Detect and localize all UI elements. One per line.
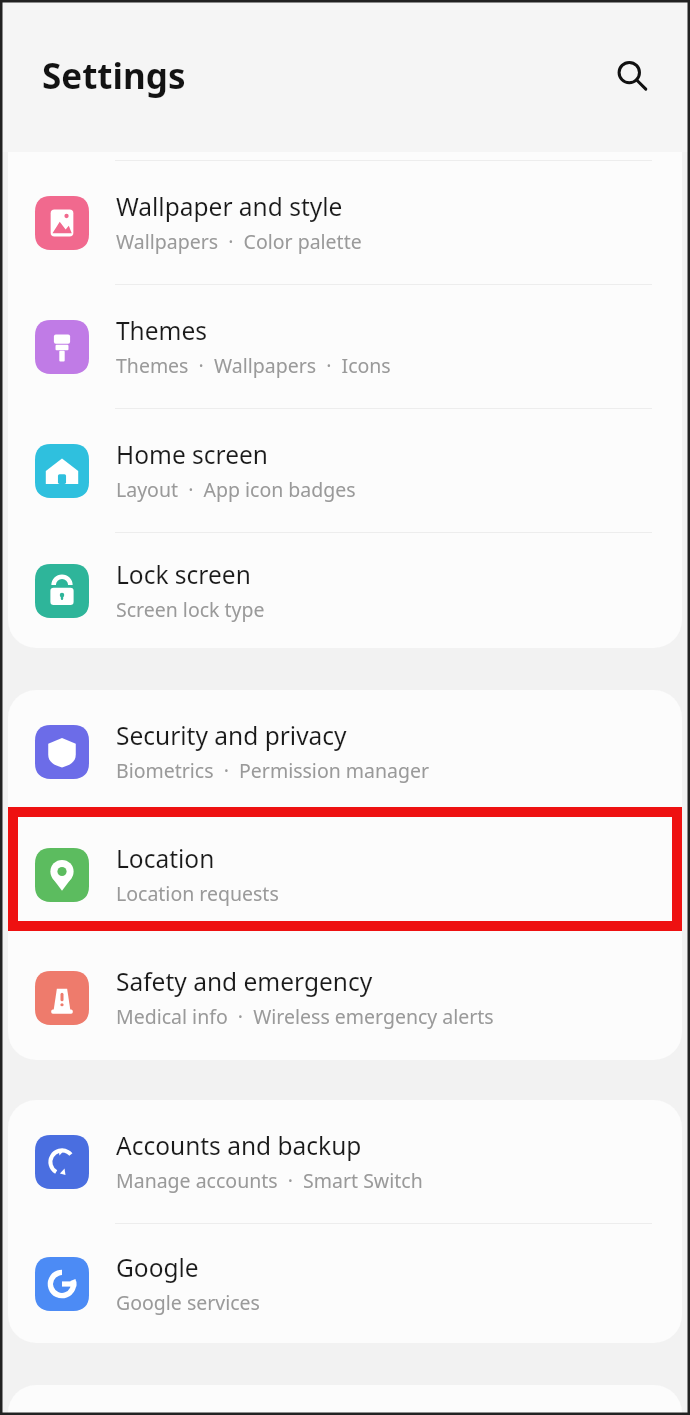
button[interactable]: Wallpaper and style (8, 161, 682, 284)
staticText: Security and privacy (116, 719, 347, 752)
staticText: Themes · Wallpapers · Icons (116, 352, 391, 379)
button[interactable]: Search (608, 52, 656, 100)
button[interactable]: Safety and emergency (8, 936, 682, 1059)
staticText: Wallpaper and style (116, 190, 343, 223)
staticText: Settings (42, 52, 186, 100)
staticText: Manage accounts · Smart Switch (116, 1167, 423, 1194)
staticText: Safety and emergency (116, 965, 373, 998)
button[interactable]: Home screen (8, 409, 682, 532)
button[interactable]: Themes (8, 285, 682, 408)
button[interactable]: Accounts and backup (8, 1100, 682, 1223)
button[interactable]: Security and privacy (8, 690, 682, 813)
staticText: Google (116, 1251, 199, 1284)
staticText: Screen lock type (116, 596, 265, 623)
staticText: Themes (116, 314, 208, 347)
staticText: Layout · App icon badges (116, 476, 356, 503)
staticText: Wallpapers · Color palette (116, 228, 362, 255)
staticText: Accounts and backup (116, 1129, 362, 1162)
staticText: Location (116, 842, 215, 875)
staticText: Location requests (116, 880, 279, 907)
staticText: Google services (116, 1289, 260, 1316)
staticText: Lock screen (116, 558, 251, 591)
staticText: Biometrics · Permission manager (116, 757, 430, 784)
button[interactable]: Google (8, 1224, 682, 1343)
button[interactable]: Lock screen (8, 533, 682, 648)
staticText: Home screen (116, 438, 268, 471)
staticText: Medical info · Wireless emergency alerts (116, 1003, 494, 1030)
button[interactable]: Location (8, 813, 682, 936)
